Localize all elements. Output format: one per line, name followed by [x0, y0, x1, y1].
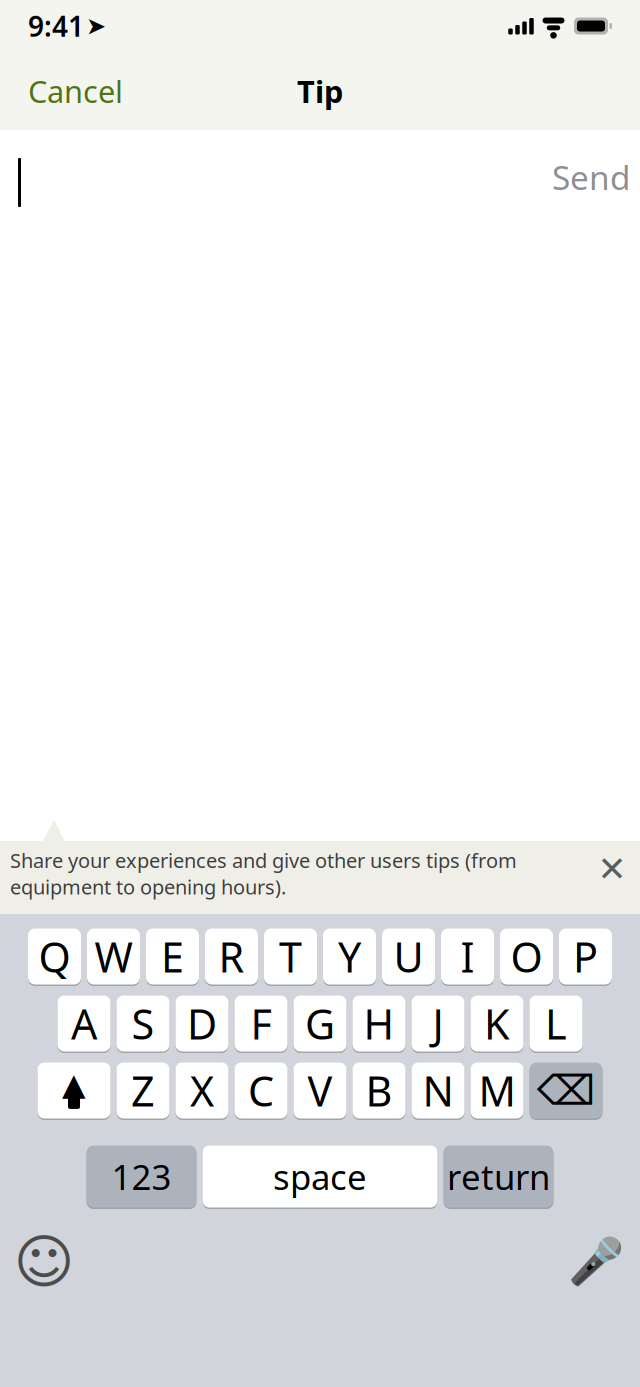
- staticText: S: [131, 996, 154, 1051]
- staticText: R: [218, 929, 244, 984]
- button[interactable]: A: [57, 997, 110, 1053]
- staticText: G: [305, 996, 335, 1051]
- staticText: Cancel: [28, 71, 123, 111]
- button[interactable]: V: [293, 1064, 346, 1120]
- staticText: 🎤: [568, 1236, 624, 1288]
- staticText: O: [510, 929, 542, 984]
- staticText: I: [460, 929, 474, 984]
- button[interactable]: O: [500, 930, 553, 986]
- button[interactable]: R: [205, 930, 258, 986]
- button[interactable]: Dictation: [569, 1235, 623, 1289]
- staticText: A: [71, 996, 97, 1051]
- staticText: Share your experiences and give other us…: [10, 847, 517, 900]
- button[interactable]: Dismiss tip: [590, 847, 634, 891]
- staticText: Tip: [297, 71, 343, 111]
- staticText: B: [365, 1063, 392, 1118]
- staticText: Y: [338, 929, 361, 984]
- staticText: return: [447, 1153, 550, 1199]
- button[interactable]: Q: [28, 930, 81, 986]
- button[interactable]: W: [87, 930, 140, 986]
- staticText: X: [190, 1063, 214, 1118]
- button[interactable]: Z: [116, 1064, 169, 1120]
- button[interactable]: D: [175, 997, 228, 1053]
- button[interactable]: U: [382, 930, 435, 986]
- button[interactable]: Y: [323, 930, 376, 986]
- button[interactable]: G: [293, 997, 346, 1053]
- button[interactable]: M: [470, 1064, 523, 1120]
- button[interactable]: F: [234, 997, 287, 1053]
- staticText: K: [484, 996, 510, 1051]
- staticText: T: [279, 929, 302, 984]
- staticText: J: [432, 996, 443, 1051]
- button[interactable]: Emoji keyboard: [17, 1235, 71, 1289]
- staticText: W: [94, 929, 132, 984]
- button[interactable]: Delete: [529, 1064, 602, 1120]
- staticText: H: [363, 996, 394, 1051]
- button[interactable]: Shift: [37, 1064, 110, 1120]
- button[interactable]: return: [443, 1147, 553, 1209]
- button[interactable]: B: [352, 1064, 405, 1120]
- button[interactable]: T: [264, 930, 317, 986]
- button[interactable]: Send: [552, 149, 631, 205]
- staticText: 123: [111, 1153, 171, 1199]
- staticText: V: [307, 1063, 332, 1118]
- button[interactable]: C: [234, 1064, 287, 1120]
- button[interactable]: J: [411, 997, 464, 1053]
- staticText: ⌫: [537, 1067, 595, 1114]
- button[interactable]: H: [352, 997, 405, 1053]
- staticText: F: [250, 996, 271, 1051]
- button[interactable]: L: [529, 997, 582, 1053]
- staticText: U: [393, 929, 423, 984]
- staticText: N: [422, 1063, 453, 1118]
- button[interactable]: Cancel: [18, 63, 133, 119]
- button[interactable]: N: [411, 1064, 464, 1120]
- staticText: Send: [552, 155, 631, 199]
- staticText: D: [187, 996, 217, 1051]
- staticText: L: [545, 996, 567, 1051]
- staticText: 9:41: [28, 7, 84, 45]
- staticText: P: [573, 929, 598, 984]
- staticText: ✕: [597, 849, 626, 888]
- staticText: space: [273, 1153, 367, 1199]
- button[interactable]: E: [146, 930, 199, 986]
- staticText: Z: [131, 1063, 155, 1118]
- staticText: E: [161, 929, 184, 984]
- staticText: ▲: [62, 1067, 86, 1102]
- button[interactable]: I: [441, 930, 494, 986]
- staticText: ▲: [39, 809, 69, 853]
- button[interactable]: P: [559, 930, 612, 986]
- staticText: M: [478, 1063, 515, 1118]
- button[interactable]: S: [116, 997, 169, 1053]
- button[interactable]: 123: [86, 1147, 196, 1209]
- staticText: ☺: [13, 1229, 74, 1295]
- staticText: C: [248, 1063, 274, 1118]
- button[interactable]: X: [175, 1064, 228, 1120]
- button[interactable]: K: [470, 997, 523, 1053]
- staticText: ➤: [86, 12, 106, 40]
- button[interactable]: space: [202, 1147, 437, 1209]
- staticText: Q: [38, 929, 70, 984]
